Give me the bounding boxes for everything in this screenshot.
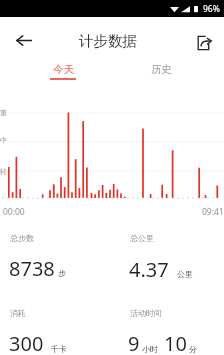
staticText: 历史: [151, 63, 172, 76]
staticText: 总公里: [130, 233, 154, 243]
staticText: 公里: [177, 269, 193, 279]
staticText: 300: [9, 330, 44, 355]
staticText: 轻: [0, 167, 7, 176]
button[interactable]: 今天: [34, 60, 91, 84]
staticText: 96%: [203, 3, 220, 15]
staticText: 中: [0, 136, 7, 145]
staticText: 今天: [53, 63, 74, 76]
staticText: 总步数: [10, 233, 34, 243]
staticText: 10: [164, 330, 187, 355]
staticText: 09:41: [202, 206, 224, 218]
staticText: 千卡: [51, 344, 67, 354]
staticText: 分: [189, 344, 197, 354]
staticText: 4.37: [129, 256, 169, 283]
staticText: 步: [58, 268, 66, 278]
staticText: 重: [0, 108, 7, 117]
staticText: 小时: [142, 344, 158, 354]
staticText: 消耗: [10, 308, 26, 318]
staticText: 9: [128, 330, 140, 355]
staticText: 计步数据: [0, 32, 220, 50]
button[interactable]: Share: [190, 28, 219, 57]
staticText: 8738: [9, 255, 55, 282]
staticText: 00:00: [3, 206, 25, 218]
button[interactable]: Back: [10, 26, 38, 54]
button[interactable]: 历史: [133, 60, 190, 84]
staticText: 活动时间: [130, 308, 162, 318]
